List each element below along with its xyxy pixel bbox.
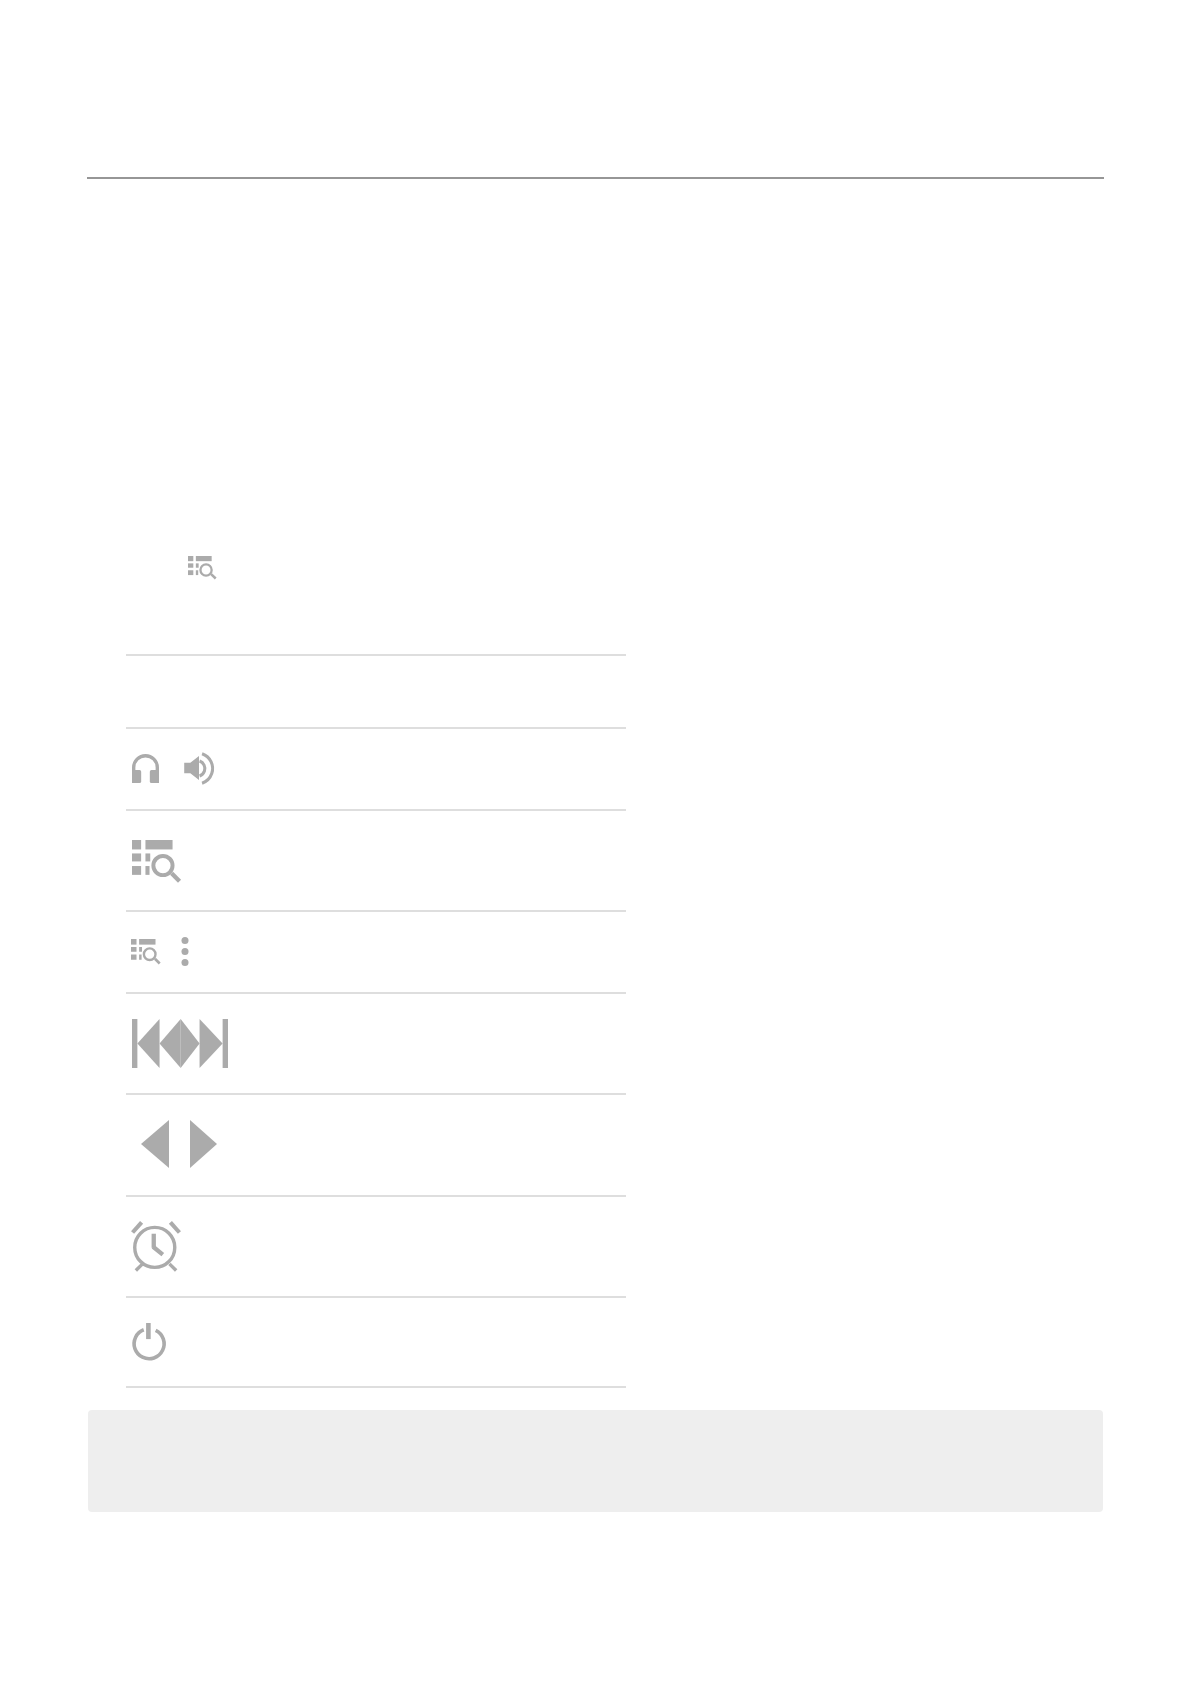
- button[interactable]: Arrow left: [141, 1120, 169, 1168]
- button[interactable]: Headphones: [132, 754, 159, 783]
- button[interactable]: Manage search: [132, 840, 180, 882]
- button[interactable]: Skip previous and next: [132, 1019, 228, 1068]
- button[interactable]: Alarm: [132, 1220, 180, 1271]
- button[interactable]: More options: [181, 937, 189, 966]
- button[interactable]: Manage search: [188, 556, 216, 579]
- button[interactable]: Power: [132, 1323, 166, 1360]
- button[interactable]: Arrow right: [190, 1120, 217, 1168]
- button[interactable]: Manage search: [131, 939, 160, 964]
- button[interactable]: Volume up: [182, 750, 216, 786]
